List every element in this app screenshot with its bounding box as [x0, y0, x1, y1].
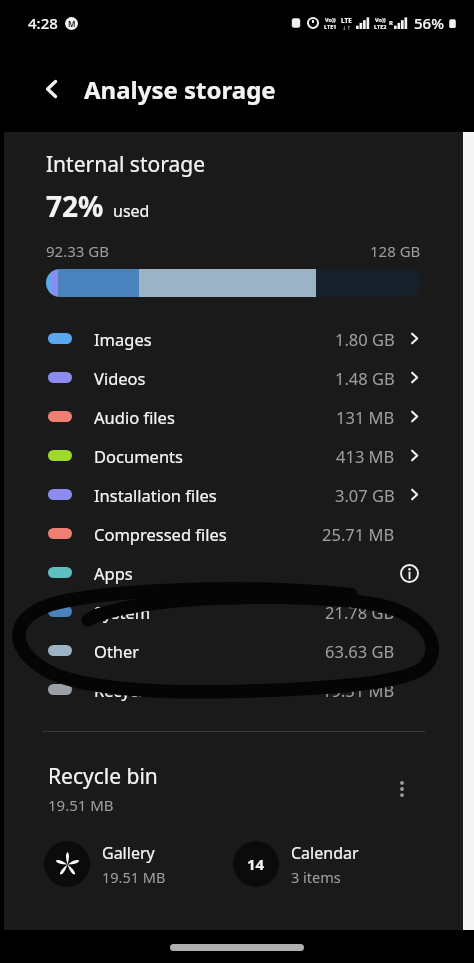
staticText: 19.51 MB [322, 679, 395, 701]
staticText: LTE [341, 16, 352, 25]
button[interactable]: Images [40, 319, 427, 358]
button[interactable]: Audio files [40, 397, 427, 436]
staticText: R [389, 19, 393, 27]
staticText: 92.33 GB [46, 241, 109, 261]
staticText: 56% [414, 13, 444, 33]
staticText: Images [94, 328, 335, 350]
staticText: Documents [94, 445, 336, 467]
staticText: LTE1 [324, 23, 337, 30]
staticText: ↓↑ [342, 25, 352, 31]
staticText: Calendar [291, 842, 359, 864]
staticText: 21.78 GB [325, 601, 395, 623]
button[interactable]: Documents [40, 436, 427, 475]
staticText: Videos [94, 367, 335, 389]
staticText: Installation files [94, 484, 335, 506]
staticText: 413 MB [336, 445, 395, 467]
staticText: LTE2 [374, 23, 387, 30]
button[interactable]: 14 [233, 841, 359, 887]
staticText: 19.51 MB [102, 867, 166, 887]
staticText: Analyse storage [84, 73, 276, 106]
staticText: System [94, 601, 325, 623]
button[interactable]: Videos [40, 358, 427, 397]
staticText: Internal storage [46, 150, 205, 179]
staticText: Recycle bin [94, 679, 322, 701]
button[interactable]: Compressed files [40, 514, 427, 553]
staticText: 25.71 MB [322, 523, 395, 545]
staticText: 3 items [291, 867, 341, 887]
staticText: used [113, 200, 150, 222]
staticText: 72% [46, 187, 104, 225]
staticText: Recycle bin [48, 762, 158, 791]
button[interactable]: Apps [40, 553, 427, 592]
button[interactable]: Back [0, 46, 474, 132]
button[interactable]: System [40, 592, 427, 631]
staticText: Compressed files [94, 523, 322, 545]
staticText: 1.48 GB [335, 367, 395, 389]
button[interactable]: Recycle bin [4, 762, 463, 815]
button[interactable]: Gallery [44, 841, 166, 887]
staticText: 4:28 [28, 13, 58, 33]
button[interactable]: Recycle bin [40, 670, 427, 709]
staticText: 3.07 GB [335, 484, 395, 506]
staticText: Vo)) [325, 16, 336, 23]
staticText: 131 MB [336, 406, 395, 428]
staticText: M [68, 18, 76, 29]
button[interactable]: More options [385, 772, 419, 806]
staticText: 19.51 MB [48, 795, 114, 815]
staticText: 128 GB [370, 241, 421, 261]
button[interactable]: Installation files [40, 475, 427, 514]
staticText: Audio files [94, 406, 336, 428]
staticText: Gallery [102, 842, 155, 864]
staticText: Other [94, 640, 325, 662]
button[interactable]: Apps info [395, 559, 423, 587]
staticText: Vo)) [375, 16, 386, 23]
staticText: 1.80 GB [335, 328, 395, 350]
staticText: 14 [247, 854, 265, 874]
staticText: 63.63 GB [325, 640, 395, 662]
button[interactable]: Other [40, 631, 427, 670]
button[interactable]: Back [34, 71, 70, 107]
staticText: Apps [94, 562, 395, 584]
